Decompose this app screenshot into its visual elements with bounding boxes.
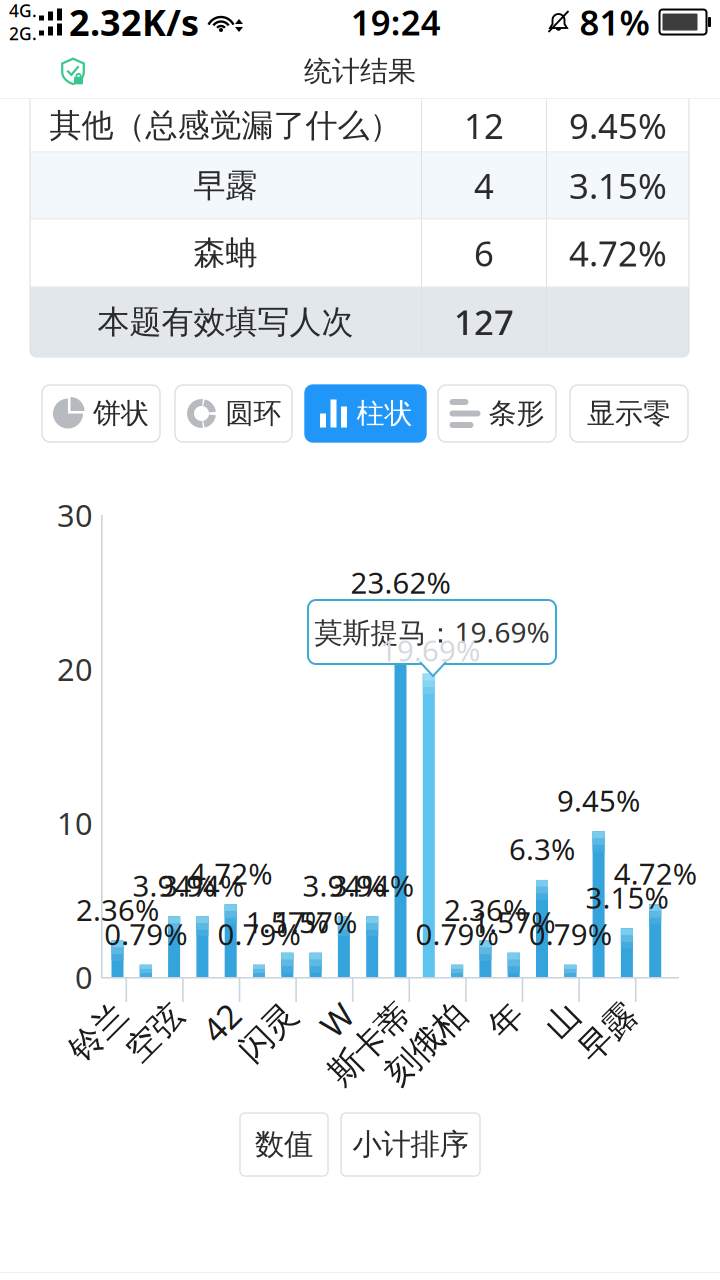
staticText: 3.94% bbox=[133, 866, 216, 905]
staticText: 数值 bbox=[255, 1126, 313, 1162]
staticText: 早露 bbox=[193, 166, 257, 205]
staticText: 127 bbox=[454, 299, 514, 345]
staticText: 6 bbox=[474, 230, 494, 276]
staticText: 3.15% bbox=[569, 162, 667, 208]
staticText: 0 bbox=[75, 957, 93, 997]
staticText: W bbox=[317, 987, 348, 1031]
staticText: 早露 bbox=[565, 988, 631, 1029]
staticText: 0.79% bbox=[416, 914, 499, 953]
staticText: 本题有效填写人次 bbox=[97, 302, 353, 342]
staticText: 0.79% bbox=[104, 914, 187, 953]
staticText: 显示零 bbox=[587, 396, 671, 431]
button[interactable]: 柱状 bbox=[305, 385, 426, 442]
button[interactable]: 条形 bbox=[438, 385, 556, 442]
staticText: 条形 bbox=[488, 396, 544, 431]
staticText: 30 bbox=[57, 495, 93, 535]
staticText: 统计结果 bbox=[304, 54, 416, 89]
staticText: 1.57% bbox=[472, 902, 555, 941]
staticText: 1.57% bbox=[246, 902, 329, 941]
staticText: 刻俄柏 bbox=[362, 988, 461, 1029]
staticText: 4.72% bbox=[189, 854, 272, 893]
staticText: 铃兰 bbox=[55, 988, 121, 1029]
staticText: 0.79% bbox=[217, 914, 300, 953]
staticText: 小计排序 bbox=[352, 1126, 468, 1162]
staticText: 斯卡蒂 bbox=[305, 988, 404, 1029]
staticText: 0.79% bbox=[529, 914, 612, 953]
staticText: 其他（总感觉漏了什么） bbox=[49, 106, 401, 145]
staticText: 81% bbox=[579, 0, 649, 45]
button[interactable]: 圆环 bbox=[175, 385, 292, 442]
staticText: 12 bbox=[464, 102, 504, 148]
staticText: 10 bbox=[57, 803, 93, 843]
staticText: 3.94% bbox=[331, 866, 414, 905]
staticText: 19.69% bbox=[380, 630, 480, 669]
staticText: 森蚺 bbox=[193, 233, 257, 273]
staticText: 闪灵 bbox=[225, 988, 291, 1029]
staticText: 莫斯提马：19.69% bbox=[314, 613, 549, 651]
staticText: 19.69% bbox=[379, 623, 479, 662]
staticText: 年 bbox=[485, 988, 518, 1029]
staticText: 9.45% bbox=[569, 102, 667, 148]
staticText: 饼状 bbox=[93, 396, 149, 431]
staticText: 2.32K/s bbox=[69, 0, 199, 46]
button[interactable]: 数值 bbox=[240, 1113, 328, 1176]
staticText: 1.57% bbox=[274, 902, 357, 941]
staticText: 圆环 bbox=[225, 396, 281, 431]
staticText: 4.72% bbox=[614, 854, 697, 893]
staticText: 42 bbox=[197, 987, 235, 1031]
staticText: 柱状 bbox=[356, 396, 412, 431]
staticText: 2.36% bbox=[76, 890, 159, 929]
staticText: 6.3% bbox=[509, 829, 575, 868]
staticText: 山 bbox=[541, 988, 574, 1029]
staticText: 2G. bbox=[9, 22, 37, 45]
button[interactable]: Security bbox=[0, 44, 112, 99]
staticText: 23.62% bbox=[350, 563, 450, 602]
staticText: 9.45% bbox=[557, 781, 640, 820]
staticText: 20 bbox=[57, 649, 93, 689]
staticText: 2.36% bbox=[444, 890, 527, 929]
staticText: 4 bbox=[474, 162, 494, 208]
button[interactable]: 小计排序 bbox=[341, 1113, 480, 1176]
staticText: 3.94% bbox=[161, 866, 244, 905]
button[interactable]: 显示零 bbox=[570, 385, 688, 442]
staticText: 3.94% bbox=[302, 866, 385, 905]
staticText: 3.15% bbox=[585, 878, 668, 917]
button[interactable]: 饼状 bbox=[42, 385, 160, 442]
staticText: 4.72% bbox=[569, 230, 667, 276]
staticText: 4G. bbox=[9, 0, 37, 22]
staticText: 空弦 bbox=[112, 988, 178, 1029]
staticText: 19:24 bbox=[351, 0, 441, 45]
